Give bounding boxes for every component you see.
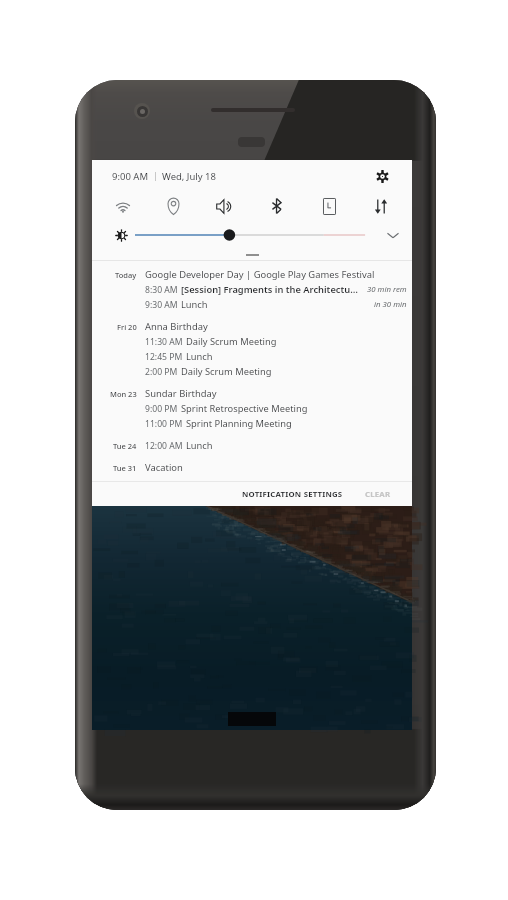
staticText: 9:00 PM <box>145 403 178 415</box>
button[interactable]: Expand quick settings <box>382 224 404 246</box>
staticText: Mon 23 <box>110 389 137 399</box>
button[interactable]: Do not disturb <box>303 192 355 220</box>
button[interactable]: Settings <box>371 165 393 187</box>
button[interactable]: Tue 31 <box>92 460 412 475</box>
staticText: [Session] Fragments in the Architectu… <box>181 283 358 296</box>
staticText: Daily Scrum Meeting <box>186 335 277 348</box>
button[interactable]: NOTIFICATION SETTINGS <box>235 484 350 505</box>
button[interactable]: 9:30 AM <box>92 297 412 312</box>
button[interactable]: CLEAR <box>358 484 398 505</box>
staticText: 30 min rem <box>367 284 407 295</box>
button[interactable]: 9:00 PM <box>92 401 412 416</box>
button[interactable]: 8:30 AM <box>92 282 412 297</box>
staticText: 12:45 PM <box>145 351 183 363</box>
staticText: 9:00 AM <box>112 170 149 183</box>
staticText: Anna Birthday <box>145 320 208 333</box>
staticText: Wed, July 18 <box>162 170 216 183</box>
staticText: Sprint Retrospective Meeting <box>181 402 308 415</box>
button[interactable]: Wi-Fi <box>97 192 148 220</box>
staticText: NOTIFICATION SETTINGS <box>242 489 343 500</box>
staticText: 12:00 AM <box>145 440 183 452</box>
staticText: 8:30 AM <box>145 284 178 296</box>
button[interactable]: Location <box>148 192 199 220</box>
staticText: Tue 31 <box>113 463 137 473</box>
staticText: Vacation <box>145 461 183 474</box>
staticText: Sprint Planning Meeting <box>186 417 292 430</box>
staticText: CLEAR <box>365 489 391 500</box>
button[interactable]: Fri 20 <box>92 319 412 334</box>
staticText: 11:00 PM <box>145 418 183 430</box>
staticText: Tue 24 <box>113 441 137 451</box>
staticText: Lunch <box>186 439 213 452</box>
staticText: Google Developer Day | Google Play Games… <box>145 268 375 281</box>
button[interactable]: Today <box>92 267 412 282</box>
staticText: in 30 min <box>374 299 407 310</box>
button[interactable]: 12:45 PM <box>92 349 412 364</box>
button[interactable]: 11:30 AM <box>92 334 412 349</box>
staticText: 11:30 AM <box>145 336 183 348</box>
button[interactable]: Bluetooth <box>251 192 303 220</box>
staticText: Lunch <box>181 298 208 311</box>
button[interactable]: Sound <box>199 192 251 220</box>
button[interactable]: 11:00 PM <box>92 416 412 431</box>
staticText: 9:30 AM <box>145 299 178 311</box>
staticText: Sundar Birthday <box>145 387 217 400</box>
staticText: Today <box>115 270 137 280</box>
button[interactable]: Tue 24 <box>92 438 412 453</box>
button[interactable]: 2:00 PM <box>92 364 412 379</box>
staticText: Lunch <box>186 350 213 363</box>
button[interactable]: Mobile data <box>355 192 407 220</box>
staticText: Daily Scrum Meeting <box>181 365 272 378</box>
button[interactable]: Mon 23 <box>92 386 412 401</box>
staticText: 2:00 PM <box>145 366 178 378</box>
staticText: Fri 20 <box>117 322 137 332</box>
